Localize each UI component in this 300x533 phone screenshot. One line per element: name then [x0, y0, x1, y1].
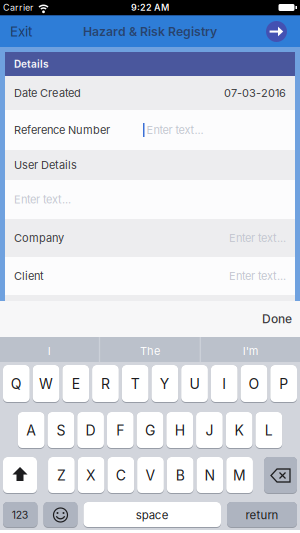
button[interactable]: K [226, 412, 252, 449]
staticText: Details [14, 58, 49, 70]
staticText: H [175, 422, 185, 439]
staticText: The [140, 344, 160, 358]
button[interactable]: G [137, 412, 163, 449]
staticText: S [56, 422, 65, 439]
staticText: E [72, 375, 80, 392]
button[interactable]: D [77, 412, 104, 449]
button[interactable]: I [211, 365, 238, 403]
button[interactable]: Done [262, 302, 300, 336]
staticText: G [145, 422, 155, 439]
button[interactable]: R [92, 365, 119, 403]
staticText: Done [262, 312, 292, 326]
staticText: V [145, 467, 155, 484]
staticText: Company [14, 231, 64, 245]
staticText: Reference Number [14, 123, 110, 137]
button[interactable]: Enter text... [5, 180, 295, 219]
button[interactable]: J [196, 412, 223, 449]
button[interactable]: space [83, 502, 221, 528]
button[interactable]: V [137, 457, 164, 494]
staticText: Hazard & Risk Registry [83, 24, 217, 39]
staticText: Y [160, 375, 170, 392]
button[interactable]: S [48, 412, 74, 449]
staticText: Carrier [3, 2, 33, 13]
staticText: M [233, 467, 246, 484]
button[interactable]: Z [48, 457, 75, 494]
button[interactable]: C [107, 457, 134, 494]
staticText: Enter text... [146, 123, 203, 137]
staticText: R [101, 375, 110, 392]
staticText: return [245, 508, 278, 522]
staticText: O [248, 375, 259, 392]
button[interactable]: Shift [3, 457, 37, 494]
staticText: L [265, 422, 273, 439]
button[interactable]: The [100, 337, 200, 365]
staticText: space [136, 508, 169, 522]
button[interactable]: M [226, 457, 253, 494]
staticText: 07-03-2016 [224, 86, 286, 100]
staticText: Enter text... [229, 231, 286, 245]
staticText: Enter text... [14, 193, 71, 206]
button[interactable]: Company [5, 219, 295, 257]
button[interactable]: H [166, 412, 193, 449]
button[interactable]: return [227, 502, 297, 528]
staticText: T [131, 375, 140, 392]
button[interactable]: B [167, 457, 194, 494]
button[interactable]: U [181, 365, 208, 403]
staticText: D [86, 422, 96, 439]
staticText: P [279, 375, 288, 392]
button[interactable]: 123 [3, 502, 37, 528]
button[interactable]: Exit [0, 15, 32, 48]
button[interactable]: I [0, 337, 99, 365]
button[interactable]: Q [3, 365, 30, 403]
button[interactable]: W [33, 365, 59, 403]
staticText: A [26, 422, 36, 439]
button[interactable]: User Details [5, 150, 295, 180]
staticText: 123 [12, 509, 29, 521]
button[interactable]: I'm [201, 337, 300, 365]
staticText: Q [11, 375, 22, 392]
staticText: Enter text... [229, 269, 286, 283]
button[interactable]: O [241, 365, 267, 403]
button[interactable]: Emoji [43, 502, 77, 528]
button[interactable]: A [18, 412, 45, 449]
button[interactable]: P [270, 365, 297, 403]
staticText: 9:22 AM [131, 2, 169, 13]
staticText: User Details [14, 158, 77, 172]
button[interactable]: F [107, 412, 134, 449]
button[interactable]: Next [266, 21, 287, 42]
staticText: B [176, 467, 185, 484]
button[interactable]: Y [151, 365, 178, 403]
staticText: I'm [243, 344, 259, 358]
staticText: I [48, 344, 51, 358]
button[interactable]: Delete [264, 457, 297, 494]
button[interactable]: Client [5, 257, 295, 295]
staticText: F [116, 422, 124, 439]
staticText: I [222, 375, 226, 392]
button[interactable]: L [255, 412, 282, 449]
staticText: N [204, 467, 215, 484]
staticText: U [190, 375, 200, 392]
staticText: J [205, 422, 213, 439]
staticText: C [116, 467, 126, 484]
staticText: X [86, 467, 96, 484]
staticText: Z [57, 467, 66, 484]
staticText: Exit [10, 23, 32, 40]
button[interactable]: E [62, 365, 89, 403]
button[interactable]: Date Created [5, 76, 295, 110]
staticText: K [235, 422, 244, 439]
staticText: Date Created [14, 86, 81, 100]
staticText: W [39, 375, 53, 392]
button[interactable]: T [122, 365, 148, 403]
staticText: Client [14, 269, 44, 283]
button[interactable]: N [197, 457, 223, 494]
button[interactable]: Reference Number [5, 110, 295, 150]
button[interactable]: X [78, 457, 104, 494]
